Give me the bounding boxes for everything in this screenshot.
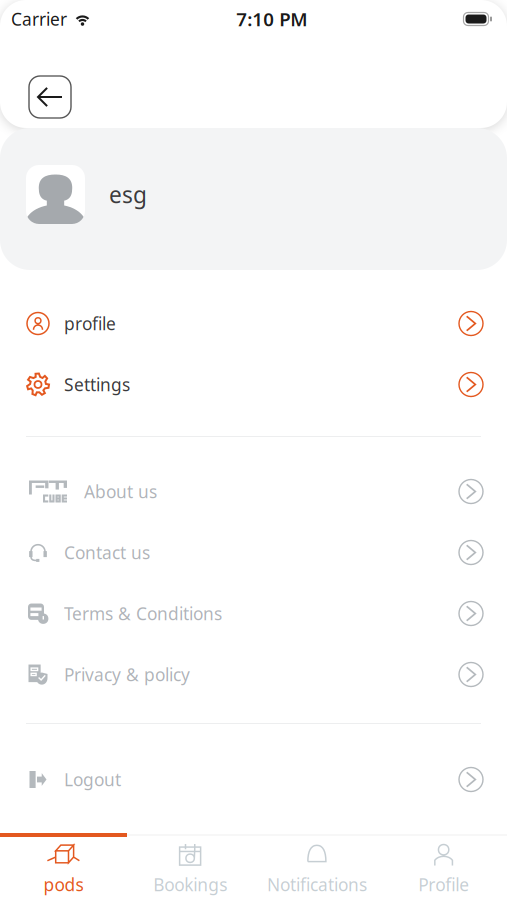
staticText: pods (43, 873, 83, 896)
button[interactable]: Settings (0, 354, 507, 415)
button[interactable]: pods (0, 837, 127, 900)
button[interactable]: About us (0, 461, 507, 522)
button[interactable]: Privacy & policy (0, 644, 507, 705)
button[interactable]: Terms & Conditions (0, 583, 507, 644)
button[interactable]: Notifications (253, 837, 380, 900)
button[interactable]: profile (0, 293, 507, 354)
staticText: Logout (64, 768, 121, 791)
staticText: Bookings (153, 873, 227, 896)
staticText: Contact us (64, 541, 150, 564)
staticText: 7:10 PM (236, 7, 307, 31)
staticText: Terms & Conditions (64, 602, 222, 625)
button[interactable]: Back (29, 76, 71, 118)
button[interactable]: Logout (0, 749, 507, 810)
staticText: esg (109, 179, 147, 209)
staticText: profile (64, 312, 116, 335)
staticText: Notifications (267, 873, 367, 896)
button[interactable]: Bookings (127, 837, 254, 900)
staticText: About us (84, 480, 157, 503)
button[interactable]: Profile (380, 837, 507, 900)
staticText: Privacy & policy (64, 663, 190, 686)
staticText: Settings (64, 373, 130, 396)
staticText: Profile (418, 873, 469, 896)
staticText: Carrier (11, 7, 67, 30)
button[interactable]: Contact us (0, 522, 507, 583)
